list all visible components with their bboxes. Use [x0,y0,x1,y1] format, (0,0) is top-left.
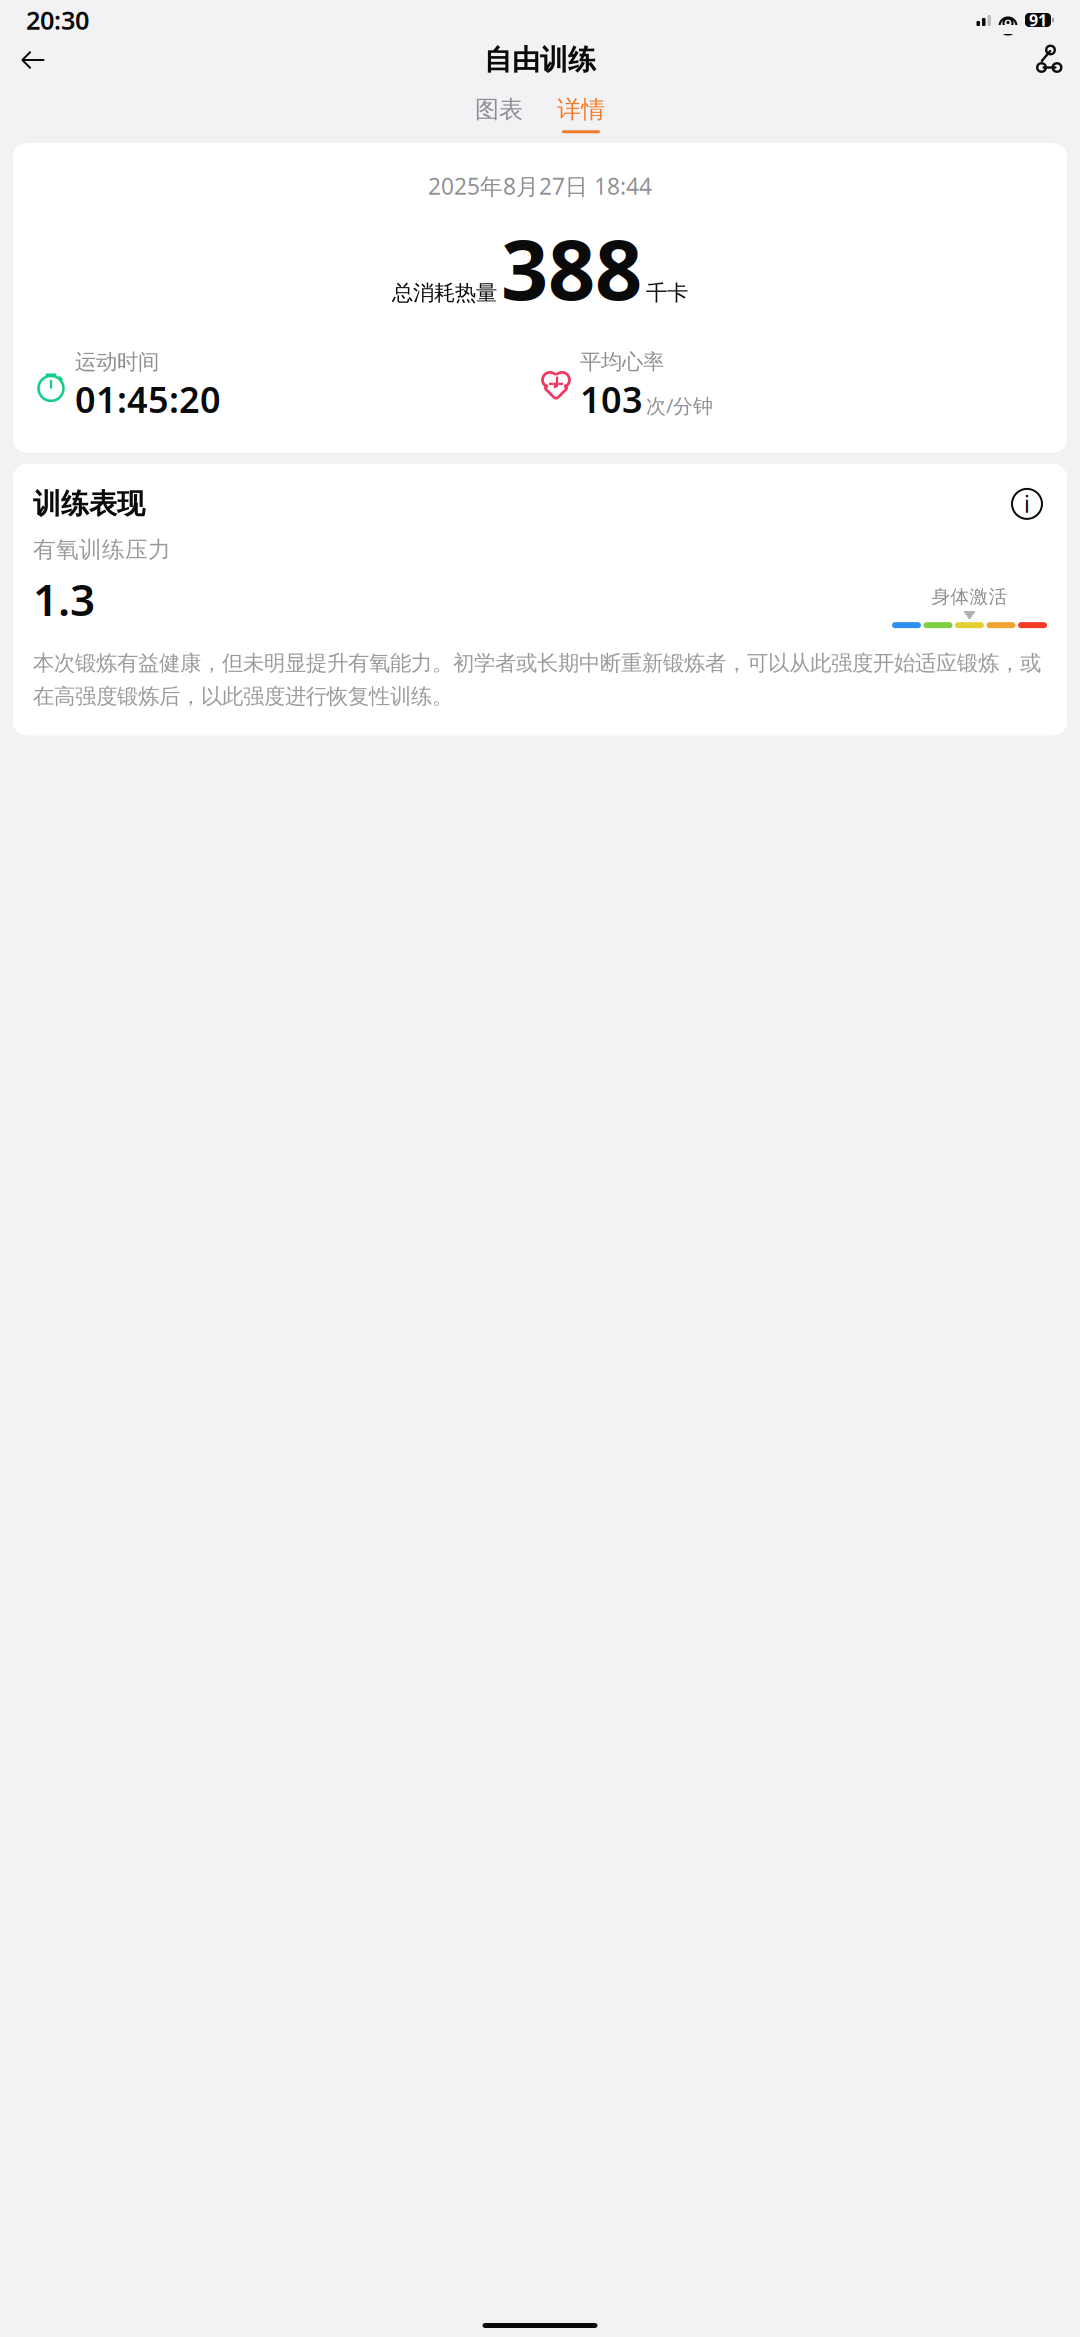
staticText: 次/分钟 [646,392,713,419]
staticText: 2025年8月27日 18:44 [428,171,652,201]
staticText: 图表 [475,95,523,124]
staticText: 千卡 [646,280,688,306]
staticText: 103 [580,375,643,423]
staticText: 01:45:20 [75,375,221,423]
staticText: 20:30 [26,3,89,37]
staticText: 运动时间 [75,349,159,375]
staticText: 详情 [557,95,605,124]
button[interactable]: 返回 [11,38,55,82]
button[interactable]: 图表 [469,95,529,133]
staticText: 388 [501,213,642,323]
staticText: 本次锻炼有益健康，但未明显提升有氧能力。初学者或长期中断重新锻炼者，可以从此强度… [33,650,1041,710]
button[interactable]: 说明 [1007,484,1047,524]
staticText: 91 [1029,9,1047,31]
staticText: 总消耗热量 [392,280,497,306]
button[interactable]: 详情 [551,95,611,133]
staticText: i [1024,489,1030,519]
staticText: 训练表现 [33,487,145,521]
staticText: 1.3 [33,570,95,628]
staticText: 自由训练 [484,43,596,77]
button[interactable]: 分享 [1025,38,1069,82]
staticText: 有氧训练压力 [33,536,171,564]
staticText: 平均心率 [580,349,664,375]
staticText: 身体激活 [931,585,1007,608]
